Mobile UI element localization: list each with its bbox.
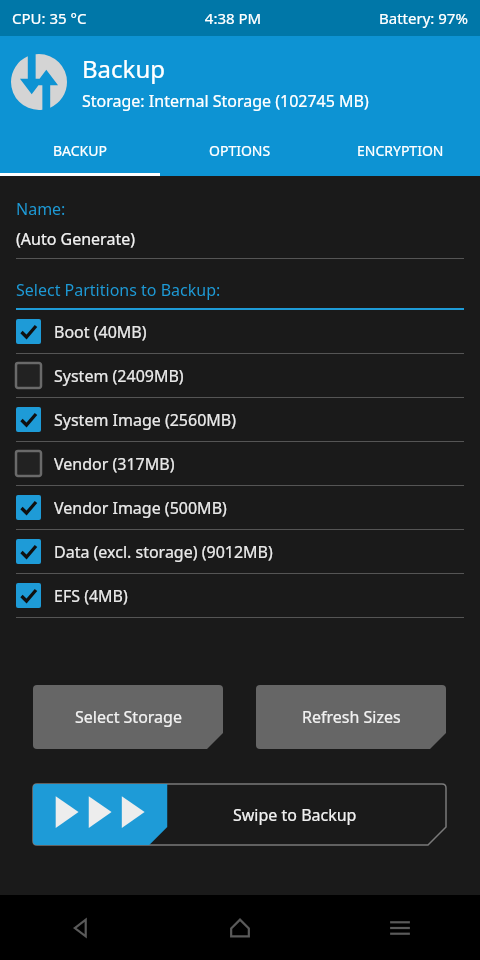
staticText: Select Partitions to Backup: xyxy=(16,279,221,301)
button[interactable]: (Auto Generate) xyxy=(16,228,480,250)
staticText: Backup xyxy=(82,52,165,85)
staticText: System (2409MB) xyxy=(54,365,184,387)
button[interactable]: Refresh Sizes xyxy=(256,685,446,749)
button[interactable]: Home xyxy=(160,895,320,960)
staticText: Vendor Image (500MB) xyxy=(54,497,227,519)
staticText: CPU: 35 °C xyxy=(12,8,87,28)
button[interactable]: Back xyxy=(0,895,160,960)
button[interactable]: Vendor Image (500MB) xyxy=(0,486,480,530)
staticText: 4:38 PM xyxy=(87,8,379,28)
button[interactable]: Swipe to Backup xyxy=(33,784,446,845)
staticText: Refresh Sizes xyxy=(302,706,401,728)
button[interactable]: EFS (4MB) xyxy=(0,574,480,618)
button[interactable]: System (2409MB) xyxy=(0,354,480,398)
staticText: System Image (2560MB) xyxy=(54,409,237,431)
staticText: Vendor (317MB) xyxy=(54,453,175,475)
staticText: ENCRYPTION xyxy=(357,141,444,160)
button[interactable]: Select Storage xyxy=(33,685,223,749)
staticText: Boot (40MB) xyxy=(54,321,147,343)
staticText: Storage: Internal Storage (102745 MB) xyxy=(82,90,369,112)
staticText: Data (excl. storage) (9012MB) xyxy=(54,541,273,563)
staticText: OPTIONS xyxy=(209,141,271,160)
button[interactable]: Data (excl. storage) (9012MB) xyxy=(0,530,480,574)
staticText: BACKUP xyxy=(53,141,107,160)
button[interactable]: BACKUP xyxy=(0,128,160,173)
staticText: Name: xyxy=(16,198,66,220)
staticText: Select Storage xyxy=(75,706,182,728)
staticText: Swipe to Backup xyxy=(233,804,357,826)
staticText: Battery: 97% xyxy=(379,8,468,28)
button[interactable]: Vendor (317MB) xyxy=(0,442,480,486)
button[interactable]: System Image (2560MB) xyxy=(0,398,480,442)
button[interactable]: ENCRYPTION xyxy=(320,128,480,173)
button[interactable]: Boot (40MB) xyxy=(0,310,480,354)
button[interactable]: Menu xyxy=(320,895,480,960)
button[interactable]: OPTIONS xyxy=(160,128,320,173)
staticText: EFS (4MB) xyxy=(54,585,128,607)
